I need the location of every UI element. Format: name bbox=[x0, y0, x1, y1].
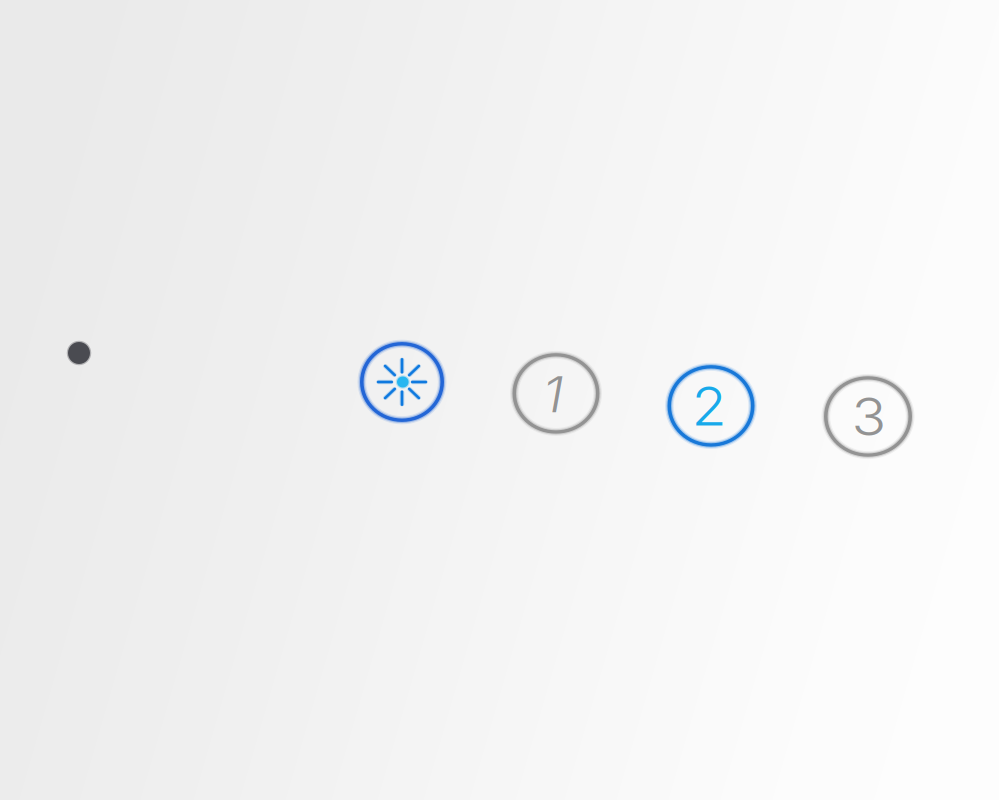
staticText: 2 bbox=[691, 371, 726, 441]
staticText: 3 bbox=[851, 382, 886, 451]
button[interactable]: 1 bbox=[512, 350, 599, 437]
button[interactable]: Brightness bbox=[360, 340, 444, 424]
staticText: 1 bbox=[542, 362, 563, 427]
button[interactable]: 2 bbox=[667, 362, 754, 449]
button[interactable]: 3 bbox=[824, 372, 912, 460]
